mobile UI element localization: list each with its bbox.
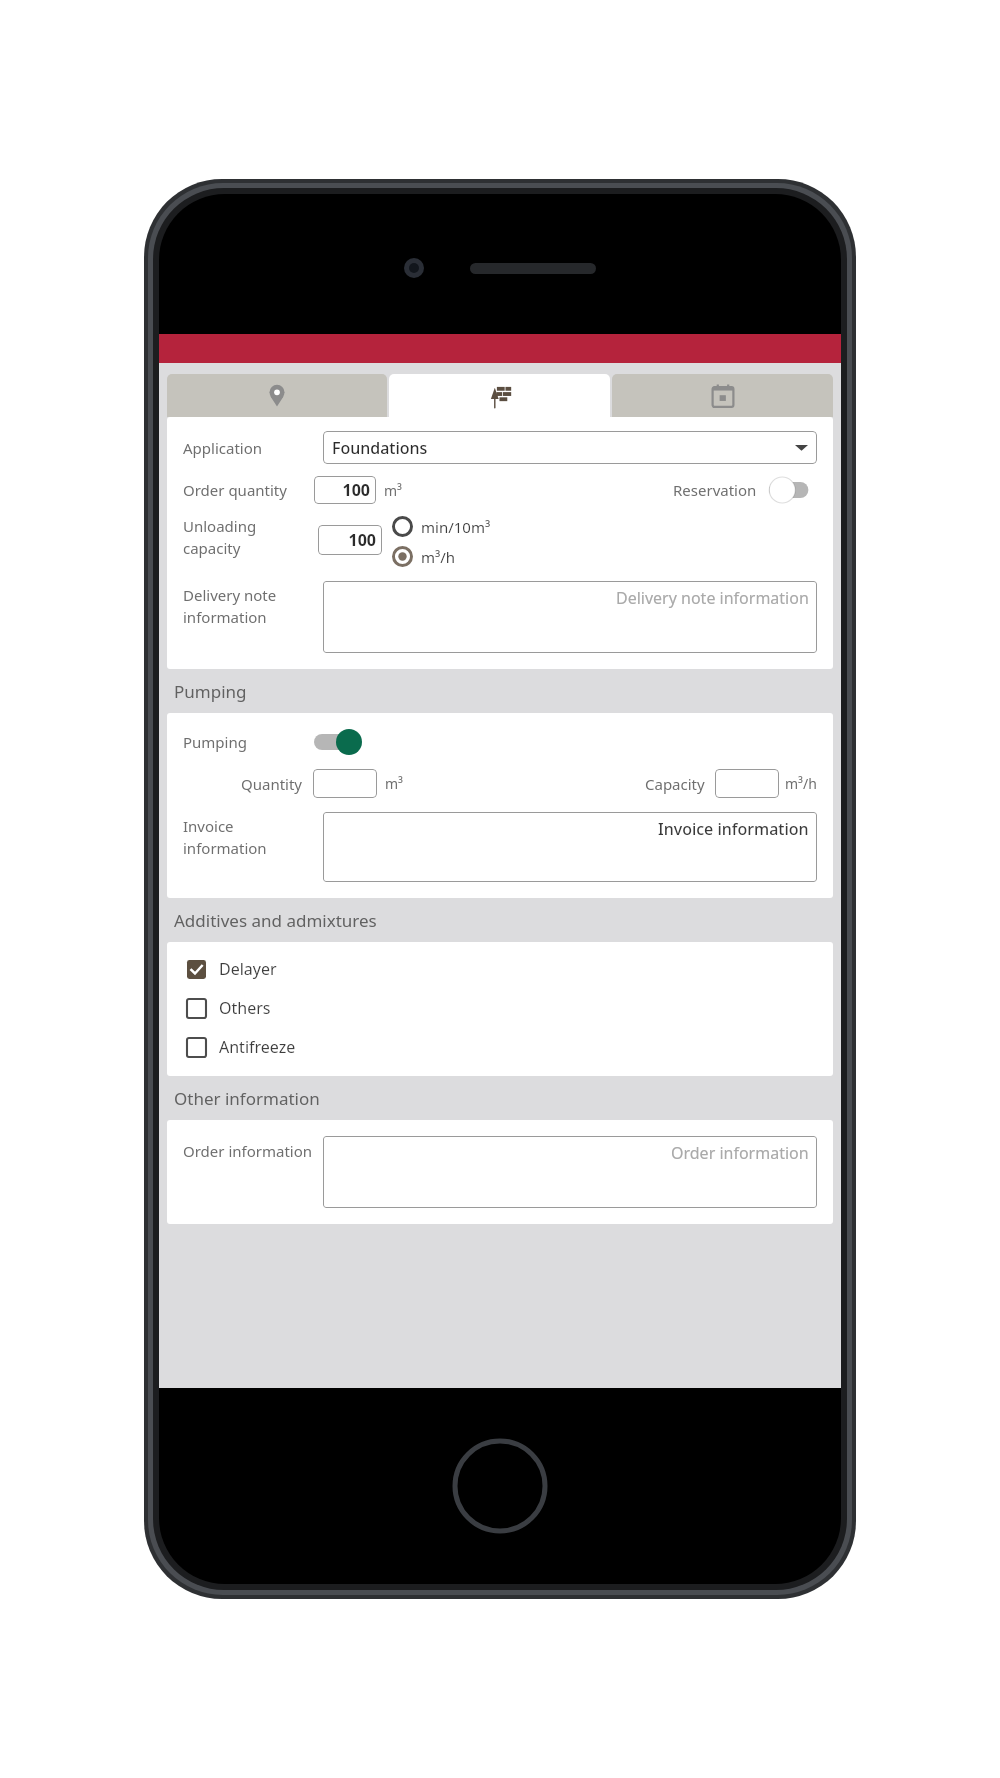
staticText: Pumping [183, 732, 314, 752]
button[interactable]: Delivery note information [323, 581, 817, 653]
staticText: Antifreeze [219, 1036, 296, 1058]
button[interactable] [715, 769, 779, 798]
button[interactable]: Concrete [389, 374, 610, 417]
staticText: Order information [671, 1142, 809, 1164]
staticText: m³/h [785, 774, 817, 793]
staticText: Pumping [174, 680, 247, 703]
staticText: 100 [348, 529, 376, 551]
staticText: Capacity [645, 774, 705, 794]
staticText: Other information [174, 1087, 320, 1110]
staticText: m³ [384, 481, 402, 500]
button[interactable]: Location [167, 374, 387, 417]
staticText: Invoice information [658, 818, 809, 840]
staticText: Additives and admixtures [174, 909, 377, 932]
button[interactable]: Others [167, 994, 833, 1022]
button[interactable]: Schedule [612, 374, 833, 417]
staticText: Quantity [241, 774, 303, 794]
staticText: Invoice [183, 816, 234, 836]
button[interactable]: min/10m³ [392, 516, 497, 537]
staticText: Reservation [673, 480, 757, 500]
staticText: 100 [342, 479, 370, 501]
staticText: Order information [183, 1141, 313, 1161]
staticText: Delivery note information [616, 587, 809, 609]
staticText: information [183, 607, 267, 627]
button[interactable]: 100 [318, 525, 382, 555]
staticText: capacity [183, 538, 241, 558]
staticText: Others [219, 997, 271, 1019]
staticText: min/10m³ [421, 517, 491, 537]
button[interactable]: Toggle off [769, 477, 817, 503]
staticText: m³/h [421, 547, 456, 567]
staticText: information [183, 838, 267, 858]
staticText: m³ [385, 774, 403, 793]
button[interactable]: Delayer [167, 955, 833, 983]
button[interactable]: Invoice information [323, 812, 817, 882]
button[interactable]: m³/h [392, 546, 462, 567]
button[interactable]: 100 [314, 476, 376, 504]
button[interactable]: Toggle on [314, 729, 362, 755]
button[interactable]: Foundations [323, 431, 817, 464]
button[interactable] [313, 769, 377, 798]
button[interactable]: Antifreeze [167, 1033, 833, 1061]
staticText: Unloading [183, 516, 257, 536]
staticText: Order quantity [183, 480, 314, 500]
staticText: Application [183, 438, 323, 458]
staticText: Foundations [332, 437, 428, 459]
button[interactable]: Order information [323, 1136, 817, 1208]
staticText: Delayer [219, 958, 277, 980]
staticText: Delivery note [183, 585, 277, 605]
